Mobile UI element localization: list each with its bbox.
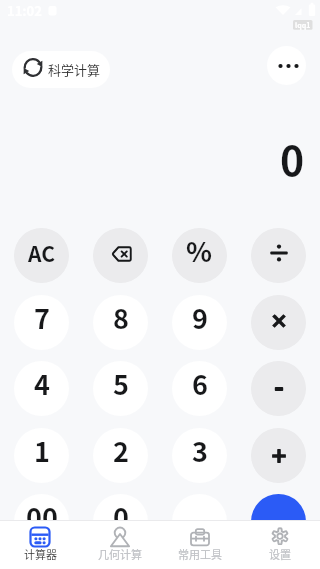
staticText: 科学计算: [48, 60, 101, 79]
button[interactable]: 计算器: [0, 521, 80, 569]
staticText: 0: [113, 497, 129, 536]
button[interactable]: 3: [172, 428, 227, 483]
button[interactable]: 5: [93, 361, 148, 416]
button[interactable]: 1: [14, 428, 69, 483]
button[interactable]: 8: [93, 295, 148, 350]
button[interactable]: 设置: [240, 521, 320, 569]
staticText: 6: [192, 364, 208, 403]
button[interactable]: 2: [93, 428, 148, 483]
staticText: 4: [34, 364, 50, 403]
button[interactable]: 7: [14, 295, 69, 350]
staticText: 设置: [269, 546, 291, 562]
button[interactable]: [93, 228, 148, 283]
button[interactable]: %: [172, 228, 227, 283]
button[interactable]: .: [172, 494, 227, 549]
button[interactable]: [251, 228, 306, 283]
button[interactable]: [251, 361, 306, 416]
button[interactable]: 9: [172, 295, 227, 350]
staticText: 0: [280, 128, 305, 184]
staticText: 00: [26, 497, 58, 536]
button[interactable]: 6: [172, 361, 227, 416]
button[interactable]: 0: [93, 494, 148, 549]
button[interactable]: 科学计算: [12, 51, 110, 88]
staticText: 3: [192, 431, 208, 470]
staticText: 9: [192, 298, 208, 337]
button[interactable]: 4: [14, 361, 69, 416]
button[interactable]: [251, 295, 306, 350]
button[interactable]: [267, 46, 306, 85]
staticText: 5: [113, 364, 129, 403]
staticText: 11:02: [7, 1, 42, 20]
button[interactable]: AC: [14, 228, 69, 283]
staticText: 常用工具: [178, 546, 222, 562]
staticText: 7: [34, 298, 50, 337]
staticText: 几何计算: [98, 546, 142, 562]
button[interactable]: 几何计算: [80, 521, 160, 569]
button[interactable]: 常用工具: [160, 521, 240, 569]
button[interactable]: [251, 428, 306, 483]
staticText: lqq1: [295, 20, 311, 30]
staticText: .: [195, 497, 204, 536]
button[interactable]: 00: [14, 494, 69, 549]
staticText: AC: [28, 238, 55, 268]
staticText: 8: [113, 298, 129, 337]
staticText: 计算器: [24, 546, 57, 562]
staticText: 1: [34, 431, 50, 470]
staticText: 2: [113, 431, 129, 470]
button[interactable]: [251, 494, 306, 549]
staticText: %: [186, 231, 213, 270]
